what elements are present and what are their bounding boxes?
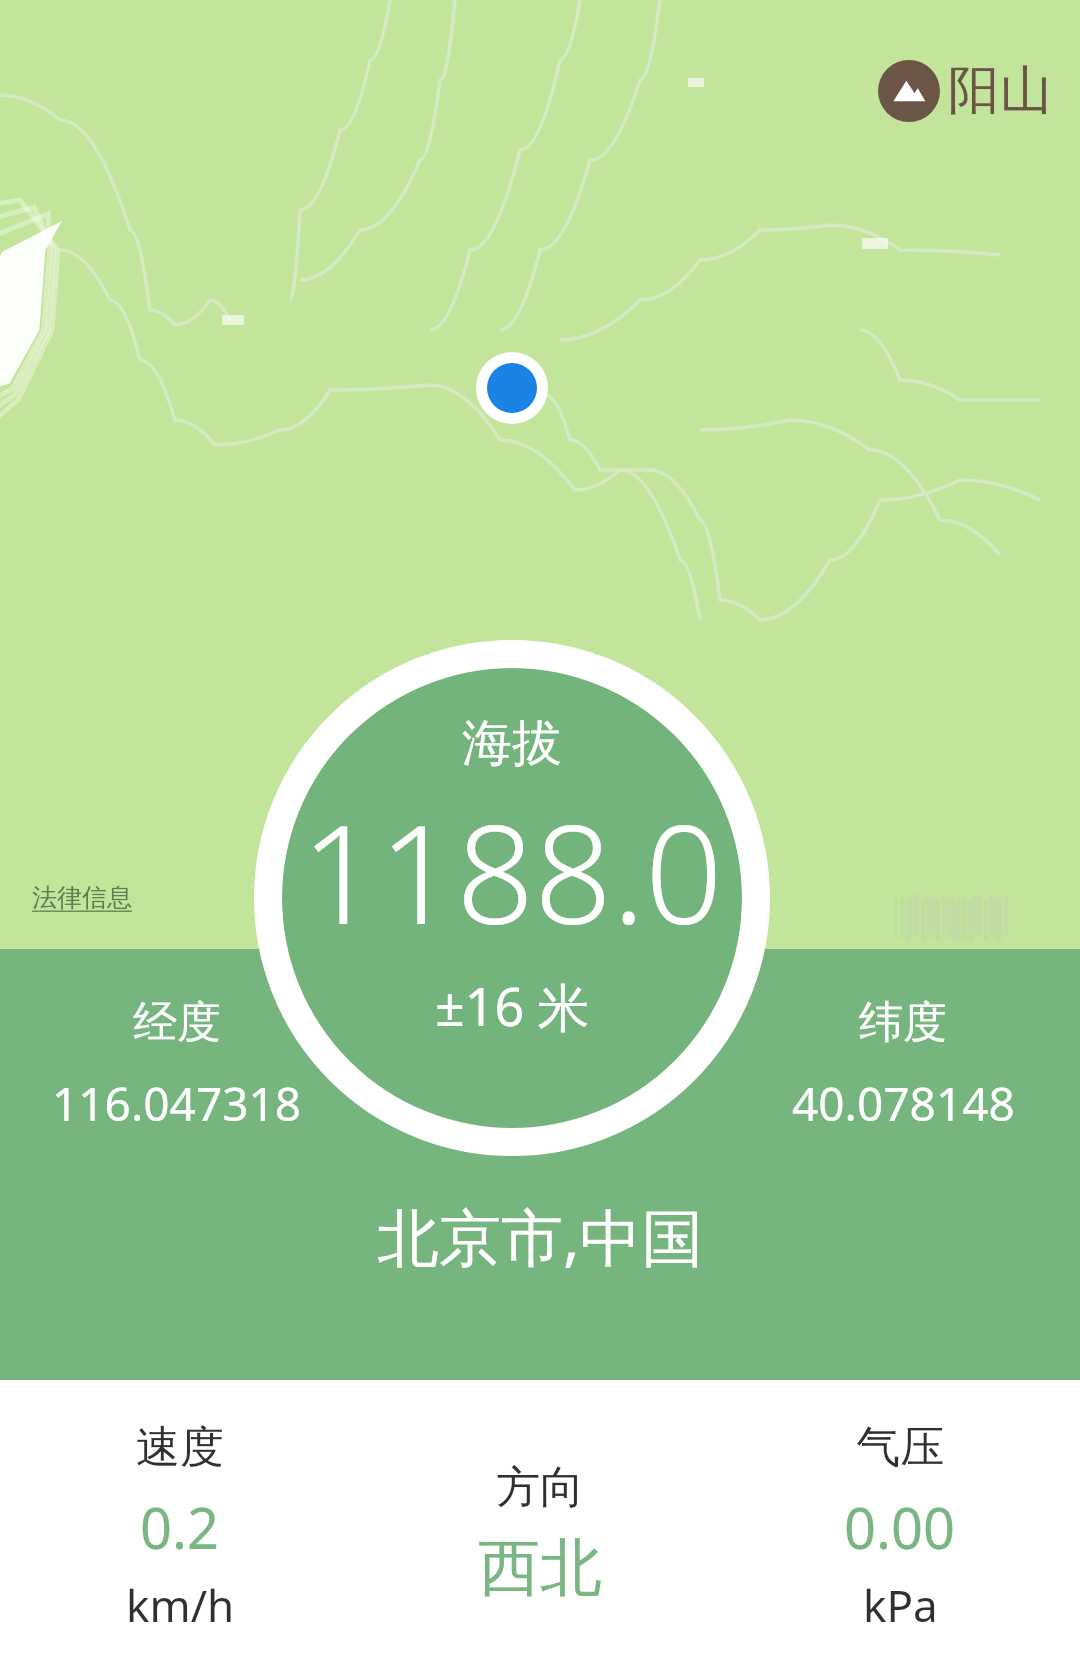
staticText: 北京市,中国: [377, 1194, 704, 1279]
button[interactable]: 方向: [360, 1380, 720, 1607]
button[interactable]: 法律信息: [30, 880, 134, 915]
button[interactable]: 海拔: [254, 640, 770, 1156]
staticText: 法律信息: [32, 882, 132, 913]
staticText: ±16 米: [435, 970, 590, 1041]
button[interactable]: 阳山 地点: [878, 58, 1052, 124]
button[interactable]: 速度: [0, 1380, 360, 1635]
staticText: 纬度: [859, 995, 947, 1050]
button[interactable]: 纬度: [726, 995, 1080, 1135]
staticText: 40.078148: [792, 1072, 1015, 1135]
staticText: 经度: [133, 995, 221, 1050]
button[interactable]: 法律信息: [0, 0, 1080, 949]
staticText: km/h: [126, 1575, 235, 1635]
staticText: kPa: [863, 1575, 938, 1635]
staticText: 0.2: [140, 1489, 220, 1565]
staticText: 速度: [136, 1420, 224, 1475]
staticText: 气压: [856, 1420, 944, 1475]
staticText: 0.00: [844, 1489, 956, 1565]
staticText: 海拔: [462, 712, 562, 775]
staticText: 1188.0: [301, 779, 723, 964]
staticText: 西北: [478, 1529, 602, 1607]
button[interactable]: 气压: [720, 1380, 1080, 1635]
staticText: 阳山: [948, 58, 1052, 124]
staticText: 116.047318: [52, 1072, 302, 1135]
button[interactable]: 经度: [0, 995, 354, 1135]
staticText: 方向: [496, 1460, 584, 1515]
